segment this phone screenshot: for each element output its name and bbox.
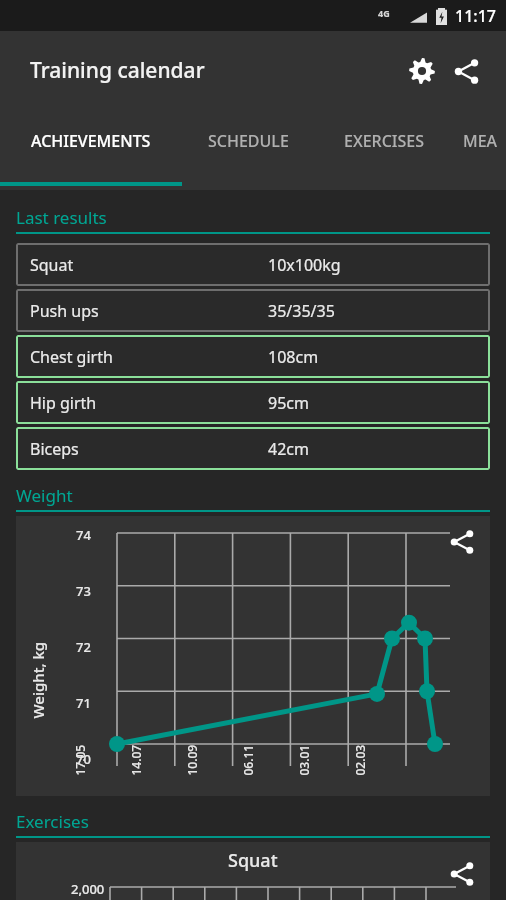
- staticText: Weight, kg: [27, 641, 47, 718]
- staticText: 74: [76, 526, 91, 544]
- button[interactable]: 74: [16, 516, 490, 796]
- staticText: 03.01: [295, 744, 311, 775]
- staticText: 06.11: [239, 744, 255, 775]
- button[interactable]: Biceps: [16, 427, 490, 470]
- staticText: Push ups: [30, 300, 99, 322]
- button[interactable]: Share: [444, 49, 488, 93]
- staticText: 14.07: [127, 744, 143, 775]
- staticText: 108cm: [268, 346, 319, 368]
- staticText: 02.03: [351, 744, 367, 775]
- button[interactable]: Squat: [16, 842, 490, 900]
- staticText: Squat: [228, 848, 278, 873]
- staticText: Exercises: [16, 810, 89, 833]
- button[interactable]: EXERCISES: [314, 110, 454, 172]
- staticText: Biceps: [30, 438, 79, 460]
- staticText: 4G: [378, 7, 390, 19]
- staticText: 17.05: [71, 744, 87, 775]
- staticText: 95cm: [268, 392, 309, 414]
- staticText: MEA: [463, 130, 498, 152]
- button[interactable]: Squat: [16, 243, 490, 286]
- staticText: 71: [76, 694, 91, 712]
- button[interactable]: Share squat chart: [444, 856, 480, 892]
- staticText: Last results: [16, 206, 107, 229]
- staticText: 72: [76, 638, 91, 656]
- staticText: 42cm: [268, 438, 309, 460]
- staticText: EXERCISES: [344, 130, 425, 152]
- staticText: 11:17: [455, 5, 496, 27]
- button[interactable]: Hip girth: [16, 381, 490, 424]
- staticText: 35/35/35: [268, 300, 335, 322]
- button[interactable]: Chest girth: [16, 335, 490, 378]
- staticText: 10.09: [183, 744, 199, 775]
- staticText: Hip girth: [30, 392, 97, 414]
- staticText: Weight: [16, 484, 73, 507]
- staticText: ACHIEVEMENTS: [31, 130, 151, 152]
- staticText: 70: [76, 750, 91, 768]
- button[interactable]: Share weight chart: [444, 524, 480, 560]
- button[interactable]: ACHIEVEMENTS: [0, 110, 182, 172]
- staticText: 73: [76, 582, 91, 600]
- staticText: 10x100kg: [268, 254, 341, 276]
- staticText: 2,000: [71, 880, 105, 898]
- staticText: Chest girth: [30, 346, 113, 368]
- button[interactable]: Push ups: [16, 289, 490, 332]
- button[interactable]: MEA: [454, 110, 506, 172]
- staticText: SCHEDULE: [208, 130, 289, 152]
- staticText: Squat: [30, 254, 74, 276]
- button[interactable]: Settings: [400, 49, 444, 93]
- staticText: Training calendar: [30, 56, 205, 85]
- button[interactable]: SCHEDULE: [182, 110, 314, 172]
